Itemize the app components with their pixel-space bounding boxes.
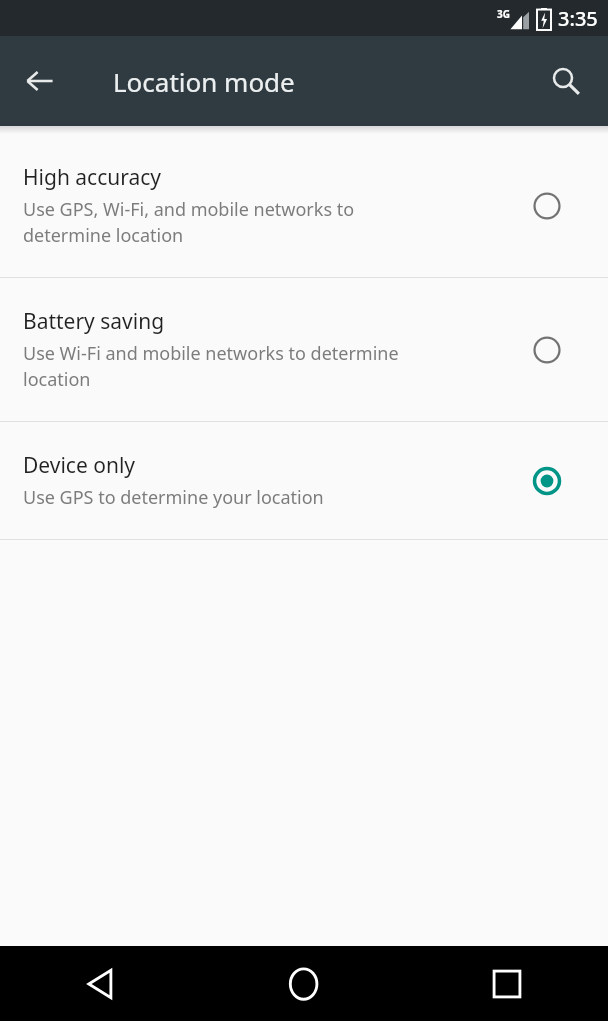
staticText: Battery saving	[23, 307, 165, 336]
button[interactable]: High accuracy	[0, 134, 608, 277]
staticText: Use GPS, Wi-Fi, and mobile networks to d…	[23, 197, 355, 248]
button[interactable]: Back	[0, 946, 202, 1021]
staticText: 3:35	[558, 5, 598, 32]
staticText: Use GPS to determine your location	[23, 485, 324, 510]
staticText: 3G	[497, 7, 510, 21]
button[interactable]: Home	[202, 946, 405, 1021]
button[interactable]: Back	[8, 49, 72, 113]
button[interactable]: Device only	[0, 422, 608, 539]
staticText: Use Wi-Fi and mobile networks to determi…	[23, 341, 399, 392]
staticText: Location mode	[113, 64, 295, 99]
staticText: Device only	[23, 451, 136, 480]
button[interactable]: Battery saving	[0, 278, 608, 421]
button[interactable]: Search	[534, 49, 598, 113]
staticText: High accuracy	[23, 163, 162, 192]
button[interactable]: Recent apps	[405, 946, 608, 1021]
